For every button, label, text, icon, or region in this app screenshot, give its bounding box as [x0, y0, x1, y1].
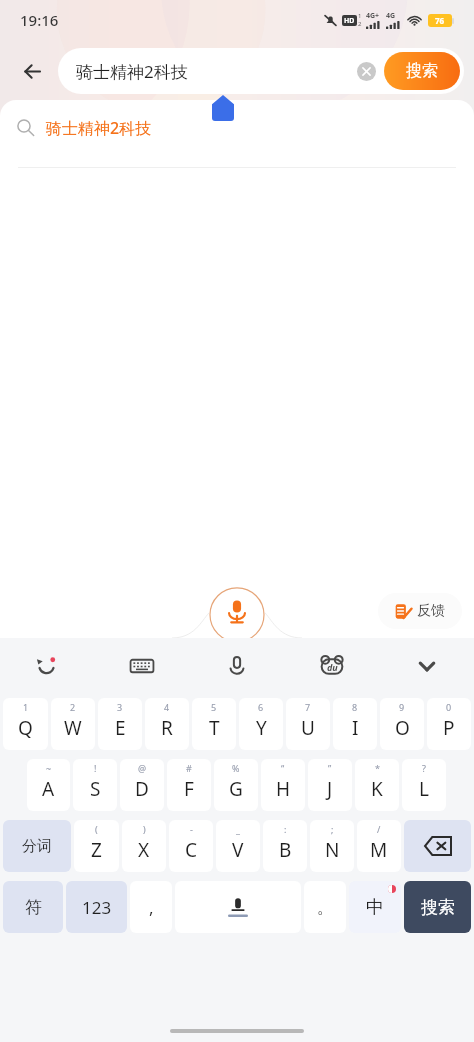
staticText: * [375, 762, 380, 774]
staticText: Q [18, 715, 33, 741]
staticText: F [184, 776, 194, 802]
button[interactable]: % [214, 759, 258, 811]
staticText: K [371, 776, 383, 802]
staticText: 反馈 [417, 602, 445, 620]
button[interactable]: * [355, 759, 399, 811]
staticText: 7 [305, 701, 311, 713]
button[interactable]: Voice search [210, 585, 264, 639]
button[interactable]: Back [10, 49, 54, 93]
button[interactable]: 7 [286, 698, 330, 750]
button[interactable]: 骑士精神2科技 [0, 100, 474, 155]
staticText: du [327, 661, 338, 673]
staticText: S [90, 776, 101, 802]
staticText: 。 [317, 897, 334, 918]
staticText: # [186, 762, 192, 774]
button[interactable]: @ [120, 759, 164, 811]
button[interactable]: : [263, 820, 307, 872]
staticText: C [185, 837, 198, 863]
staticText: I [352, 715, 359, 741]
staticText: % [232, 762, 240, 774]
button[interactable]: “ [261, 759, 305, 811]
button[interactable]: Backspace [404, 820, 471, 872]
staticText: G [229, 776, 243, 802]
staticText: X [138, 837, 150, 863]
button[interactable]: Keyboard layout [94, 638, 189, 694]
staticText: ) [143, 823, 146, 835]
staticText: U [301, 715, 315, 741]
button[interactable]: ! [73, 759, 117, 811]
staticText: 4G [386, 11, 396, 21]
staticText: E [115, 715, 126, 741]
staticText: T [209, 715, 220, 741]
button[interactable]: 符 [3, 881, 63, 933]
staticText: M [370, 837, 388, 863]
staticText: ~ [46, 762, 52, 774]
staticText: 0 [446, 701, 452, 713]
button[interactable]: ) [122, 820, 166, 872]
staticText: Z [91, 837, 102, 863]
staticText: 2 [70, 701, 76, 713]
button[interactable]: Hide keyboard [379, 638, 474, 694]
staticText: 中 [366, 896, 384, 919]
button[interactable]: Baidu input [284, 638, 379, 694]
button[interactable]: _ [216, 820, 260, 872]
button[interactable]: 8 [333, 698, 377, 750]
button[interactable]: ~ [27, 759, 70, 811]
button[interactable]: 1 [3, 698, 48, 750]
staticText: Y [256, 715, 267, 741]
button[interactable]: Emoji [0, 638, 94, 694]
staticText: ; [331, 823, 334, 835]
button[interactable]: 分词 [3, 820, 71, 872]
staticText: V [232, 837, 244, 863]
staticText: 1 [358, 12, 362, 20]
button[interactable]: Voice input [189, 638, 284, 694]
button[interactable]: ; [310, 820, 354, 872]
button[interactable]: Space [175, 881, 301, 933]
button[interactable]: # [167, 759, 211, 811]
button[interactable]: 骑士精神2科技 [58, 48, 464, 94]
staticText: 8 [352, 701, 358, 713]
staticText: 19:16 [20, 10, 59, 30]
button[interactable]: ? [402, 759, 446, 811]
button[interactable]: ( [74, 820, 119, 872]
staticText: 搜索 [421, 897, 455, 918]
button[interactable]: ” [308, 759, 352, 811]
staticText: O [395, 715, 410, 741]
staticText: HD [344, 16, 355, 26]
button[interactable]: 搜索 [404, 881, 471, 933]
staticText: 2 [358, 20, 362, 28]
button[interactable]: Clear [351, 56, 381, 86]
button[interactable]: 3 [98, 698, 142, 750]
button[interactable]: 2 [51, 698, 95, 750]
button[interactable]: / [357, 820, 401, 872]
button[interactable]: 5 [192, 698, 236, 750]
button[interactable]: 。 [304, 881, 346, 933]
staticText: A [42, 776, 55, 802]
staticText: 5 [211, 701, 217, 713]
staticText: - [190, 823, 193, 835]
staticText: 骑士精神2科技 [46, 117, 152, 139]
staticText: _ [236, 823, 240, 835]
button[interactable]: , [130, 881, 172, 933]
staticText: 符 [25, 897, 42, 918]
staticText: D [135, 776, 149, 802]
staticText: N [325, 837, 340, 863]
button[interactable]: 9 [380, 698, 424, 750]
staticText: 9 [399, 701, 405, 713]
button[interactable]: 4 [145, 698, 189, 750]
staticText: ! [94, 762, 97, 774]
staticText: 分词 [22, 837, 52, 856]
button[interactable]: 0 [427, 698, 471, 750]
button[interactable]: 6 [239, 698, 283, 750]
staticText: ( [95, 823, 98, 835]
button[interactable]: - [169, 820, 213, 872]
button[interactable]: 反馈 [378, 593, 462, 629]
button[interactable]: 搜索 [384, 52, 460, 90]
staticText: 123 [82, 896, 112, 919]
button[interactable]: 中 [349, 881, 401, 933]
staticText: 搜索 [406, 61, 438, 81]
staticText: 6 [258, 701, 264, 713]
button[interactable]: 123 [66, 881, 127, 933]
staticText: J [327, 776, 333, 802]
staticText: 76 [435, 15, 445, 26]
